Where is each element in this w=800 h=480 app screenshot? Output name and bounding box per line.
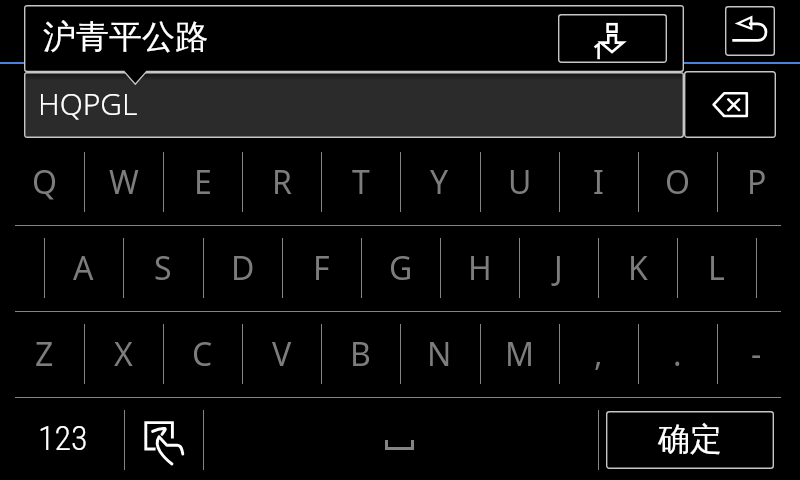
staticText: B xyxy=(350,332,371,376)
button[interactable]: V xyxy=(242,311,321,397)
staticText: V xyxy=(272,332,292,376)
button[interactable]: W xyxy=(84,139,163,225)
staticText: K xyxy=(628,246,648,290)
button[interactable]: - xyxy=(717,311,796,397)
button[interactable]: P xyxy=(717,139,796,225)
staticText: L xyxy=(708,246,725,290)
staticText: . xyxy=(673,332,682,376)
staticText: I xyxy=(593,160,604,204)
staticText: Y xyxy=(430,160,449,204)
button[interactable]: HQPGL xyxy=(24,72,684,138)
staticText: 确定 xyxy=(658,419,722,459)
button[interactable]: O xyxy=(638,139,717,225)
staticText: Q xyxy=(32,160,57,204)
button[interactable]: Q xyxy=(5,139,84,225)
button[interactable]: J xyxy=(519,225,598,311)
staticText: U xyxy=(508,160,532,204)
staticText: A xyxy=(73,246,94,290)
button[interactable]: M xyxy=(480,311,559,397)
button[interactable]: Y xyxy=(400,139,479,225)
button[interactable]: Z xyxy=(5,311,84,397)
button[interactable]: U xyxy=(480,139,559,225)
button[interactable]: Return xyxy=(725,6,775,56)
button[interactable]: 123 xyxy=(0,398,124,480)
button[interactable]: , xyxy=(559,311,638,397)
button[interactable]: . xyxy=(638,311,717,397)
button[interactable]: 确定 xyxy=(606,411,774,469)
staticText: O xyxy=(665,160,690,204)
staticText: D xyxy=(231,246,255,290)
staticText: , xyxy=(594,332,603,376)
staticText: N xyxy=(427,332,452,376)
button[interactable]: C xyxy=(163,311,242,397)
button[interactable]: S xyxy=(123,225,202,311)
button[interactable]: X xyxy=(84,311,163,397)
staticText: 沪青平公路 xyxy=(43,16,208,58)
button[interactable]: Space xyxy=(203,398,598,480)
staticText: C xyxy=(192,332,213,376)
button[interactable]: T xyxy=(321,139,400,225)
staticText: G xyxy=(389,246,413,290)
staticText: - xyxy=(751,332,762,376)
staticText: J xyxy=(554,246,563,290)
button[interactable]: N xyxy=(400,311,479,397)
button[interactable]: G xyxy=(361,225,440,311)
staticText: P xyxy=(747,160,767,204)
staticText: 123 xyxy=(38,418,88,458)
staticText: F xyxy=(313,246,330,290)
button[interactable]: L xyxy=(677,225,756,311)
button[interactable]: E xyxy=(163,139,242,225)
button[interactable]: More candidates xyxy=(558,14,667,63)
button[interactable]: A xyxy=(44,225,123,311)
staticText: W xyxy=(109,160,139,204)
button[interactable]: K xyxy=(598,225,677,311)
button[interactable]: R xyxy=(242,139,321,225)
staticText: R xyxy=(272,160,292,204)
button[interactable]: I xyxy=(559,139,638,225)
button[interactable]: F xyxy=(282,225,361,311)
staticText: X xyxy=(114,332,133,376)
button[interactable]: H xyxy=(440,225,519,311)
button[interactable]: Backspace xyxy=(684,71,776,138)
staticText: H xyxy=(468,246,492,290)
button[interactable]: D xyxy=(203,225,282,311)
staticText: Z xyxy=(35,332,54,376)
button[interactable]: B xyxy=(321,311,400,397)
button[interactable]: 沪青平公路 xyxy=(24,5,684,72)
staticText: S xyxy=(154,246,172,290)
staticText: HQPGL xyxy=(38,83,138,124)
staticText: T xyxy=(352,160,370,204)
staticText: E xyxy=(194,160,212,204)
staticText: M xyxy=(505,332,535,376)
button[interactable]: Handwriting input xyxy=(124,398,203,480)
